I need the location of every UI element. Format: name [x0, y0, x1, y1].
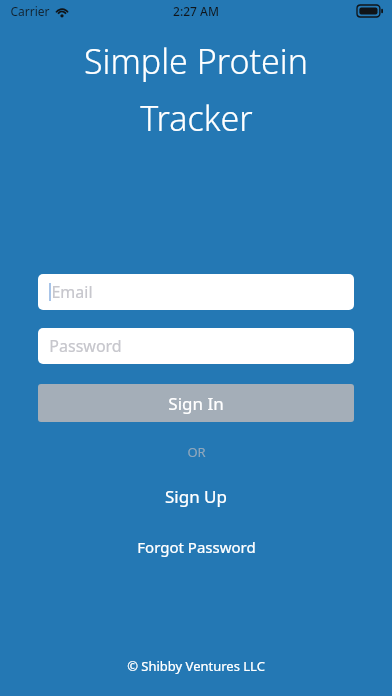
staticText: Forgot Password [137, 537, 256, 557]
button[interactable]: Email [38, 274, 354, 310]
staticText: OR [187, 443, 206, 461]
button[interactable]: Sign Up [143, 481, 249, 512]
staticText: Simple Protein [84, 38, 308, 84]
staticText: Email [51, 281, 93, 303]
staticText: Carrier [10, 3, 50, 19]
button[interactable]: Sign In [38, 384, 354, 422]
staticText: Sign In [168, 392, 224, 415]
button[interactable]: Forgot Password [119, 533, 274, 561]
other: Battery full [357, 5, 383, 17]
button[interactable]: Password [38, 328, 354, 364]
staticText: Sign Up [165, 485, 227, 508]
staticText: Tracker [140, 95, 253, 141]
staticText: © Shibby Ventures LLC [127, 657, 265, 675]
staticText: 2:27 AM [173, 3, 219, 19]
staticText: Password [49, 335, 122, 357]
